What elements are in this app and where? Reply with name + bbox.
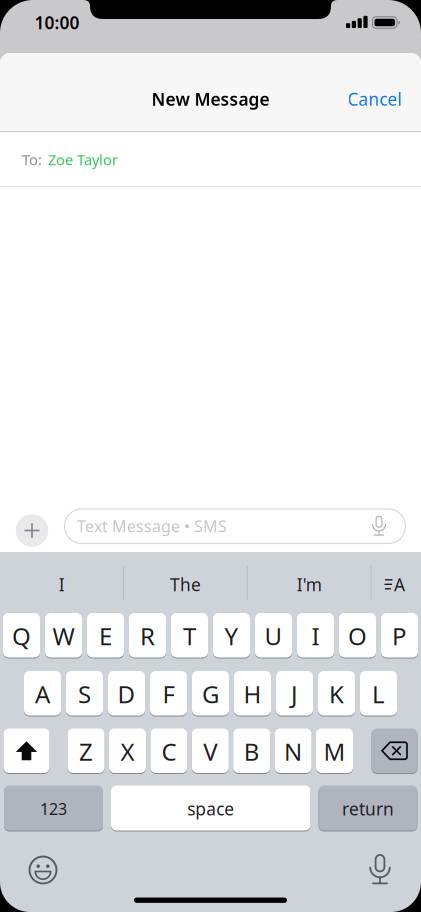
- staticText: 123: [40, 798, 67, 819]
- button[interactable]: To:: [0, 132, 421, 187]
- button[interactable]: Apps: [16, 514, 48, 547]
- staticText: E: [99, 620, 112, 652]
- staticText: H: [243, 678, 261, 710]
- staticText: A: [35, 678, 50, 710]
- button[interactable]: B: [233, 728, 270, 773]
- button[interactable]: C: [150, 728, 187, 773]
- button[interactable]: return: [318, 785, 417, 831]
- button[interactable]: Shift: [3, 728, 49, 773]
- staticText: Y: [224, 620, 238, 652]
- staticText: return: [342, 797, 394, 820]
- button[interactable]: Predictions: [371, 560, 421, 608]
- button[interactable]: space: [111, 785, 310, 831]
- button[interactable]: N: [275, 728, 312, 773]
- staticText: space: [187, 797, 234, 820]
- staticText: N: [284, 736, 302, 767]
- staticText: X: [120, 736, 134, 767]
- button[interactable]: Y: [213, 612, 250, 658]
- button[interactable]: Text Message: [64, 509, 405, 543]
- staticText: T: [183, 620, 196, 652]
- staticText: K: [329, 678, 344, 710]
- staticText: L: [372, 678, 385, 710]
- button[interactable]: G: [192, 670, 229, 716]
- button[interactable]: W: [45, 612, 82, 658]
- staticText: P: [392, 620, 407, 652]
- staticText: Cancel: [347, 87, 401, 110]
- staticText: Zoe Taylor: [48, 150, 118, 169]
- staticText: J: [291, 678, 298, 710]
- staticText: O: [348, 620, 367, 652]
- button[interactable]: Dictate: [364, 510, 394, 542]
- button[interactable]: Delete: [371, 728, 417, 773]
- staticText: U: [264, 620, 282, 652]
- button[interactable]: I: [0, 560, 123, 608]
- staticText: New Message: [151, 87, 269, 110]
- staticText: I'm: [297, 573, 322, 596]
- staticText: Z: [79, 736, 93, 767]
- staticText: 10:00: [34, 11, 79, 34]
- button[interactable]: E: [87, 612, 124, 658]
- button[interactable]: Emoji: [21, 848, 65, 892]
- staticText: B: [244, 736, 260, 767]
- staticText: To:: [22, 150, 42, 169]
- button[interactable]: The: [124, 560, 247, 608]
- button[interactable]: R: [129, 612, 166, 658]
- staticText: I: [59, 573, 65, 596]
- staticText: F: [162, 678, 174, 710]
- button[interactable]: U: [255, 612, 292, 658]
- staticText: W: [52, 620, 74, 652]
- button[interactable]: I: [297, 612, 334, 658]
- button[interactable]: Dictation: [358, 848, 402, 892]
- button[interactable]: I'm: [248, 560, 371, 608]
- button[interactable]: A: [24, 670, 61, 716]
- button[interactable]: O: [339, 612, 376, 658]
- button[interactable]: D: [108, 670, 145, 716]
- button[interactable]: K: [318, 670, 355, 716]
- staticText: The: [170, 573, 201, 596]
- button[interactable]: J: [276, 670, 313, 716]
- button[interactable]: Z: [68, 728, 105, 773]
- staticText: S: [78, 678, 91, 710]
- button[interactable]: H: [234, 670, 271, 716]
- staticText: Text Message • SMS: [77, 515, 227, 537]
- staticText: M: [323, 736, 345, 767]
- button[interactable]: P: [381, 612, 418, 658]
- button[interactable]: Q: [3, 612, 40, 658]
- staticText: G: [202, 678, 219, 710]
- staticText: R: [140, 620, 155, 652]
- staticText: A: [394, 573, 405, 596]
- button[interactable]: F: [150, 670, 187, 716]
- button[interactable]: T: [171, 612, 208, 658]
- button[interactable]: X: [109, 728, 146, 773]
- staticText: D: [117, 678, 135, 710]
- button[interactable]: L: [360, 670, 397, 716]
- button[interactable]: S: [66, 670, 103, 716]
- button[interactable]: 123: [4, 785, 103, 831]
- button[interactable]: V: [192, 728, 229, 773]
- button[interactable]: Cancel: [347, 87, 401, 110]
- staticText: I: [311, 620, 319, 652]
- staticText: V: [203, 736, 217, 767]
- button[interactable]: M: [316, 728, 353, 773]
- staticText: Q: [12, 620, 31, 652]
- staticText: C: [161, 736, 176, 767]
